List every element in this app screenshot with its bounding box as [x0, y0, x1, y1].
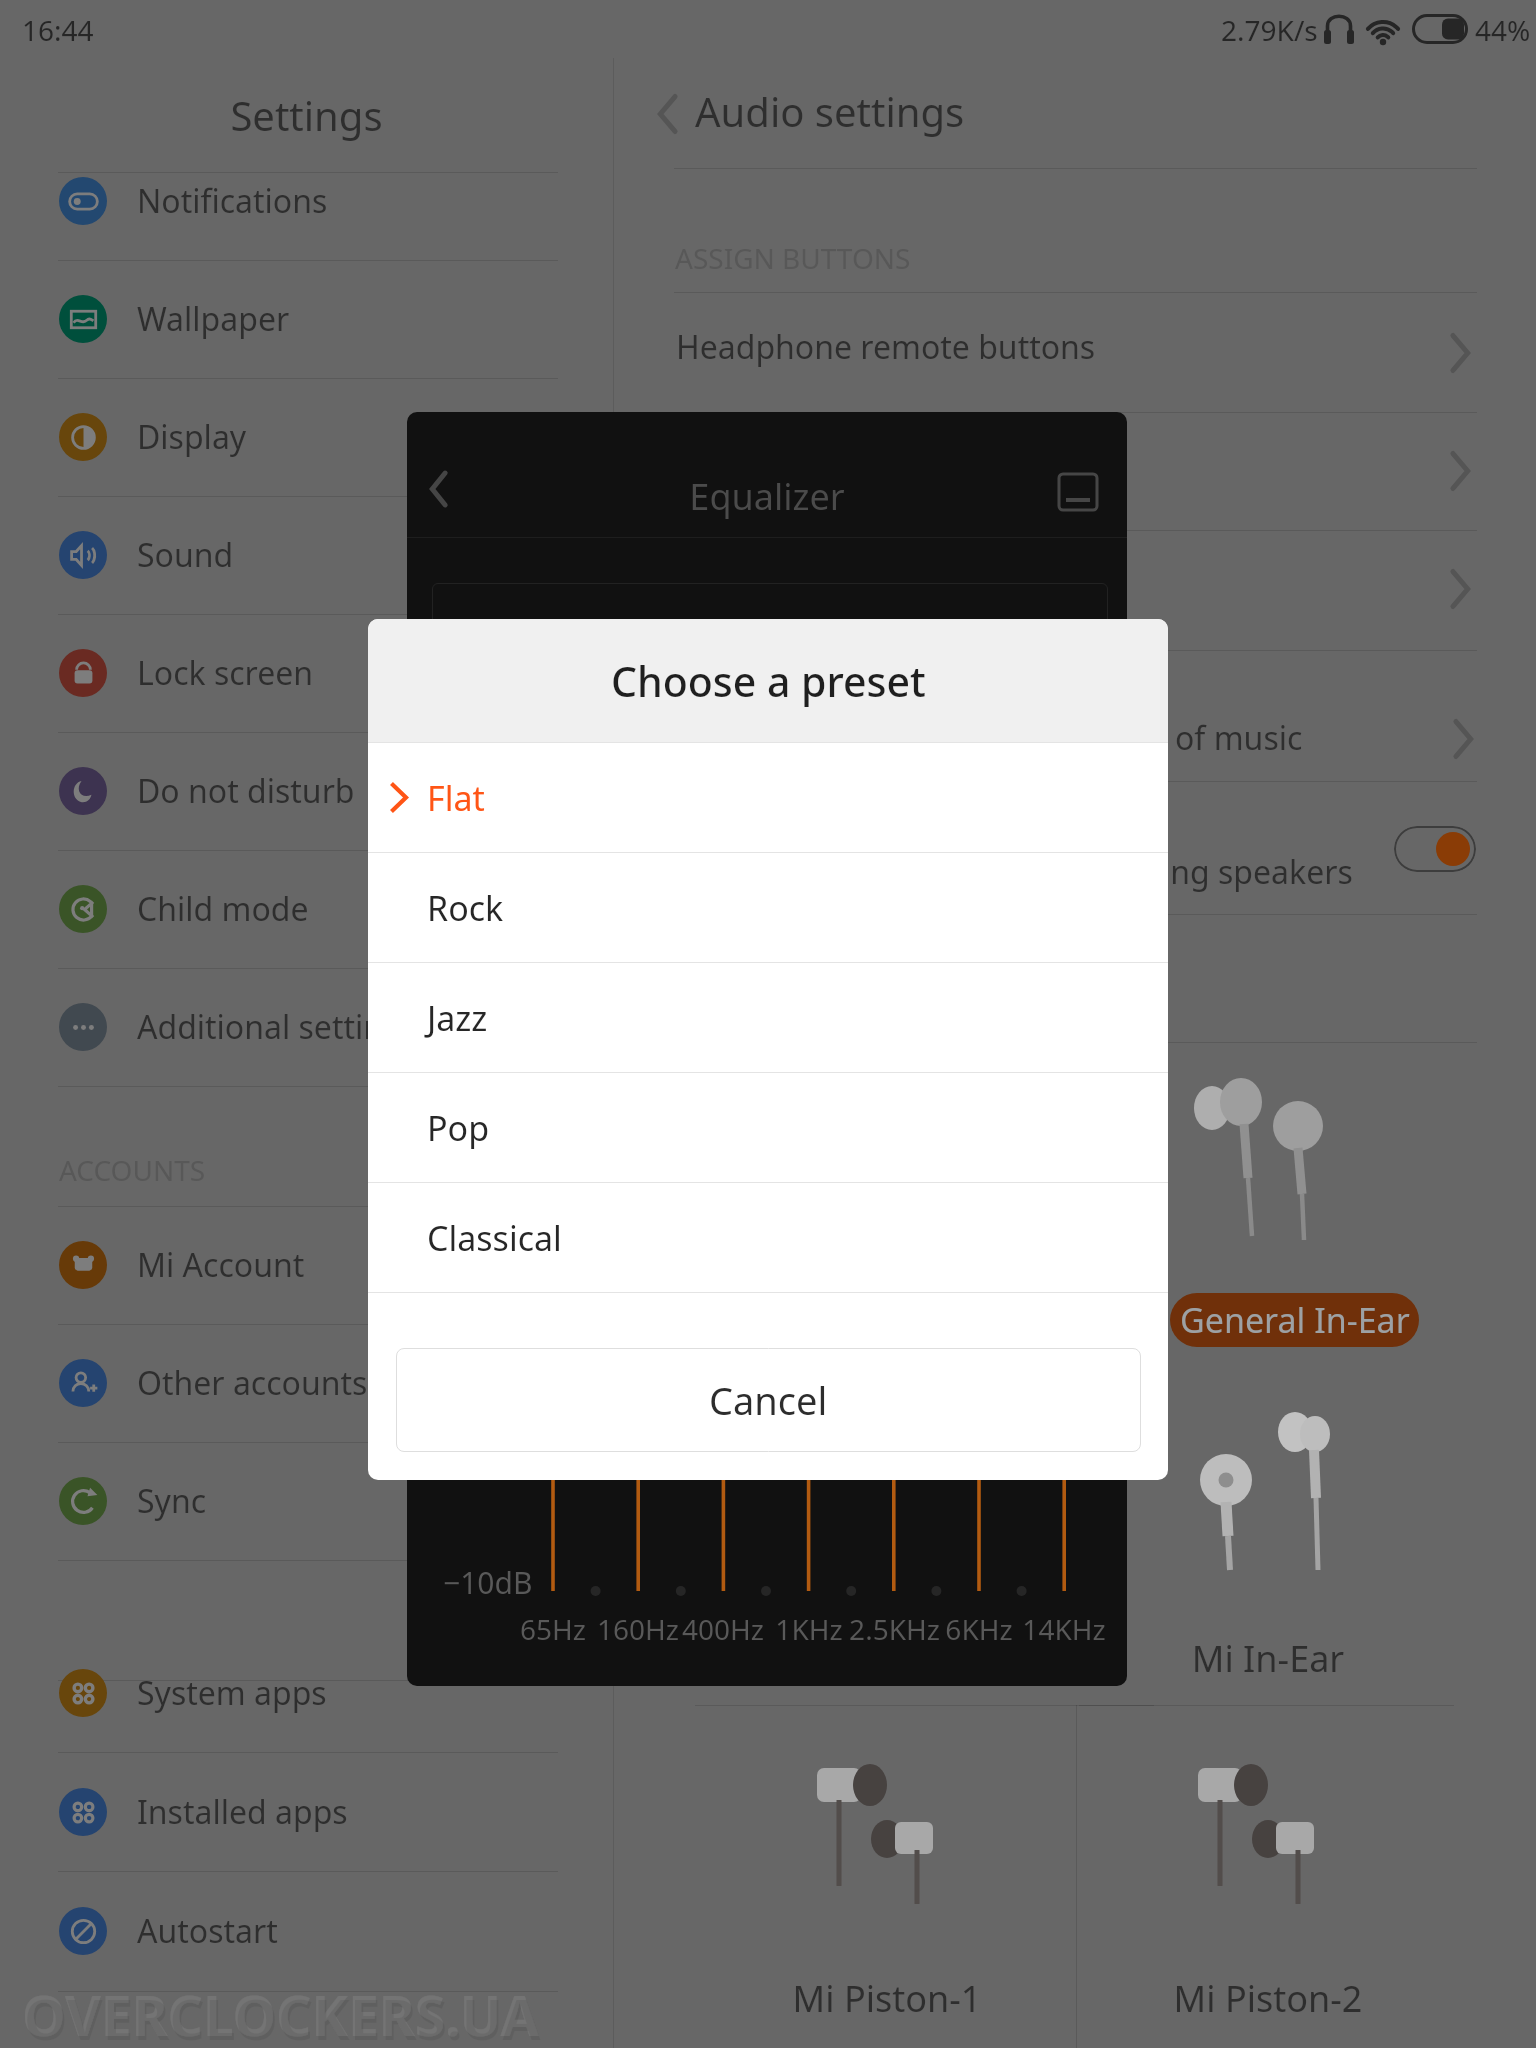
button[interactable] [614, 412, 1477, 530]
button[interactable]: Mi Piston-1 [687, 1716, 1087, 2048]
staticText: Classical [427, 1215, 562, 1261]
staticText: 6KHz [945, 1610, 1013, 1648]
staticText: Wallpaper [137, 297, 290, 341]
staticText: Lock screen [137, 651, 314, 695]
staticText: Installed apps [137, 1790, 348, 1834]
staticText: Sync [137, 1479, 207, 1523]
staticText: Choose a preset [611, 653, 926, 709]
button[interactable]: Save preset [1057, 472, 1101, 516]
staticText: Equalizer [407, 472, 1127, 521]
button[interactable]: Jazz [368, 963, 1168, 1072]
button[interactable]: Headphone remote buttons [614, 294, 1477, 412]
staticText: Sound [137, 533, 234, 577]
button[interactable]: Child mode [0, 850, 613, 968]
staticText: 44% [1475, 11, 1531, 49]
staticText: Headphone remote buttons [676, 325, 1096, 369]
button[interactable]: Sound [0, 496, 613, 614]
button[interactable]: Sync [0, 1442, 613, 1560]
button[interactable]: Other accounts [0, 1324, 613, 1442]
staticText: Additional settings [137, 1005, 419, 1049]
button[interactable]: Pop [368, 1073, 1168, 1182]
button[interactable]: Flat [368, 743, 1168, 852]
staticText: Display [137, 415, 247, 459]
button[interactable]: Display [0, 378, 613, 496]
staticText: Child mode [137, 887, 309, 931]
staticText: Audio settings [695, 84, 965, 138]
staticText: Jazz [427, 995, 488, 1041]
staticText: Other accounts [137, 1361, 368, 1405]
staticText: 65Hz [520, 1610, 586, 1648]
staticText: Autostart [137, 1909, 278, 1953]
button[interactable]: Rock [368, 853, 1168, 962]
staticText: Notifications [137, 179, 328, 223]
button[interactable]: Installed apps [0, 1753, 613, 1871]
button[interactable]: Autostart [0, 1872, 613, 1990]
staticText: −10dB [443, 1562, 533, 1603]
staticText: Mi Piston-1 [687, 1974, 1087, 2023]
button[interactable]: Mi Account [0, 1206, 613, 1324]
staticText: Cancel [709, 1374, 828, 1426]
button[interactable]: Additional settings [0, 968, 613, 1086]
staticText: ACCOUNTS [59, 1151, 206, 1189]
staticText: ing speakers [1162, 850, 1353, 894]
button[interactable]: System apps [0, 1634, 613, 1752]
staticText: General In-Ear [1180, 1297, 1410, 1343]
button[interactable] [614, 530, 1477, 648]
staticText: Flat [458, 611, 520, 660]
button[interactable]: Mi Piston-2 [1068, 1716, 1468, 2048]
staticText: Mi Account [137, 1243, 305, 1287]
button[interactable]: Wallpaper [0, 260, 613, 378]
staticText: Flat [427, 775, 485, 821]
staticText: 400Hz [682, 1610, 764, 1648]
staticText: Pop [427, 1105, 490, 1151]
button[interactable]: Back [415, 464, 467, 516]
staticText: Mi Piston-2 [1068, 1974, 1468, 2023]
staticText: 16:44 [22, 11, 94, 49]
staticText: Settings [0, 88, 613, 142]
staticText: ASSIGN BUTTONS [675, 239, 911, 277]
button[interactable]: General In-Ear [1068, 1044, 1468, 1384]
button[interactable]: Mi In-Ear [1068, 1376, 1468, 1716]
staticText: OVERCLOCKERS.UA [24, 1981, 541, 2048]
button[interactable]: Flat [432, 583, 1108, 675]
staticText: 160Hz [597, 1610, 679, 1648]
staticText: System apps [137, 1671, 327, 1715]
staticText: 1KHz [775, 1610, 843, 1648]
staticText: Mi In-Ear [1068, 1634, 1468, 1683]
button[interactable]: Toggle speakers [1394, 826, 1476, 872]
staticText: of music [1175, 716, 1303, 760]
button[interactable]: Back [636, 82, 700, 146]
staticText: 2.79K/s [1221, 11, 1318, 49]
button[interactable]: Do not disturb [0, 732, 613, 850]
staticText: 14KHz [1022, 1610, 1106, 1648]
button[interactable]: Lock screen [0, 614, 613, 732]
button[interactable]: Classical [368, 1183, 1168, 1292]
staticText: Do not disturb [137, 769, 355, 813]
button[interactable]: Cancel [396, 1348, 1141, 1452]
staticText: 2.5KHz [849, 1610, 940, 1648]
staticText: OVERCLOCKERS.UA [22, 1977, 539, 2048]
button[interactable]: Notifications [0, 142, 613, 260]
staticText: Rock [427, 885, 504, 931]
